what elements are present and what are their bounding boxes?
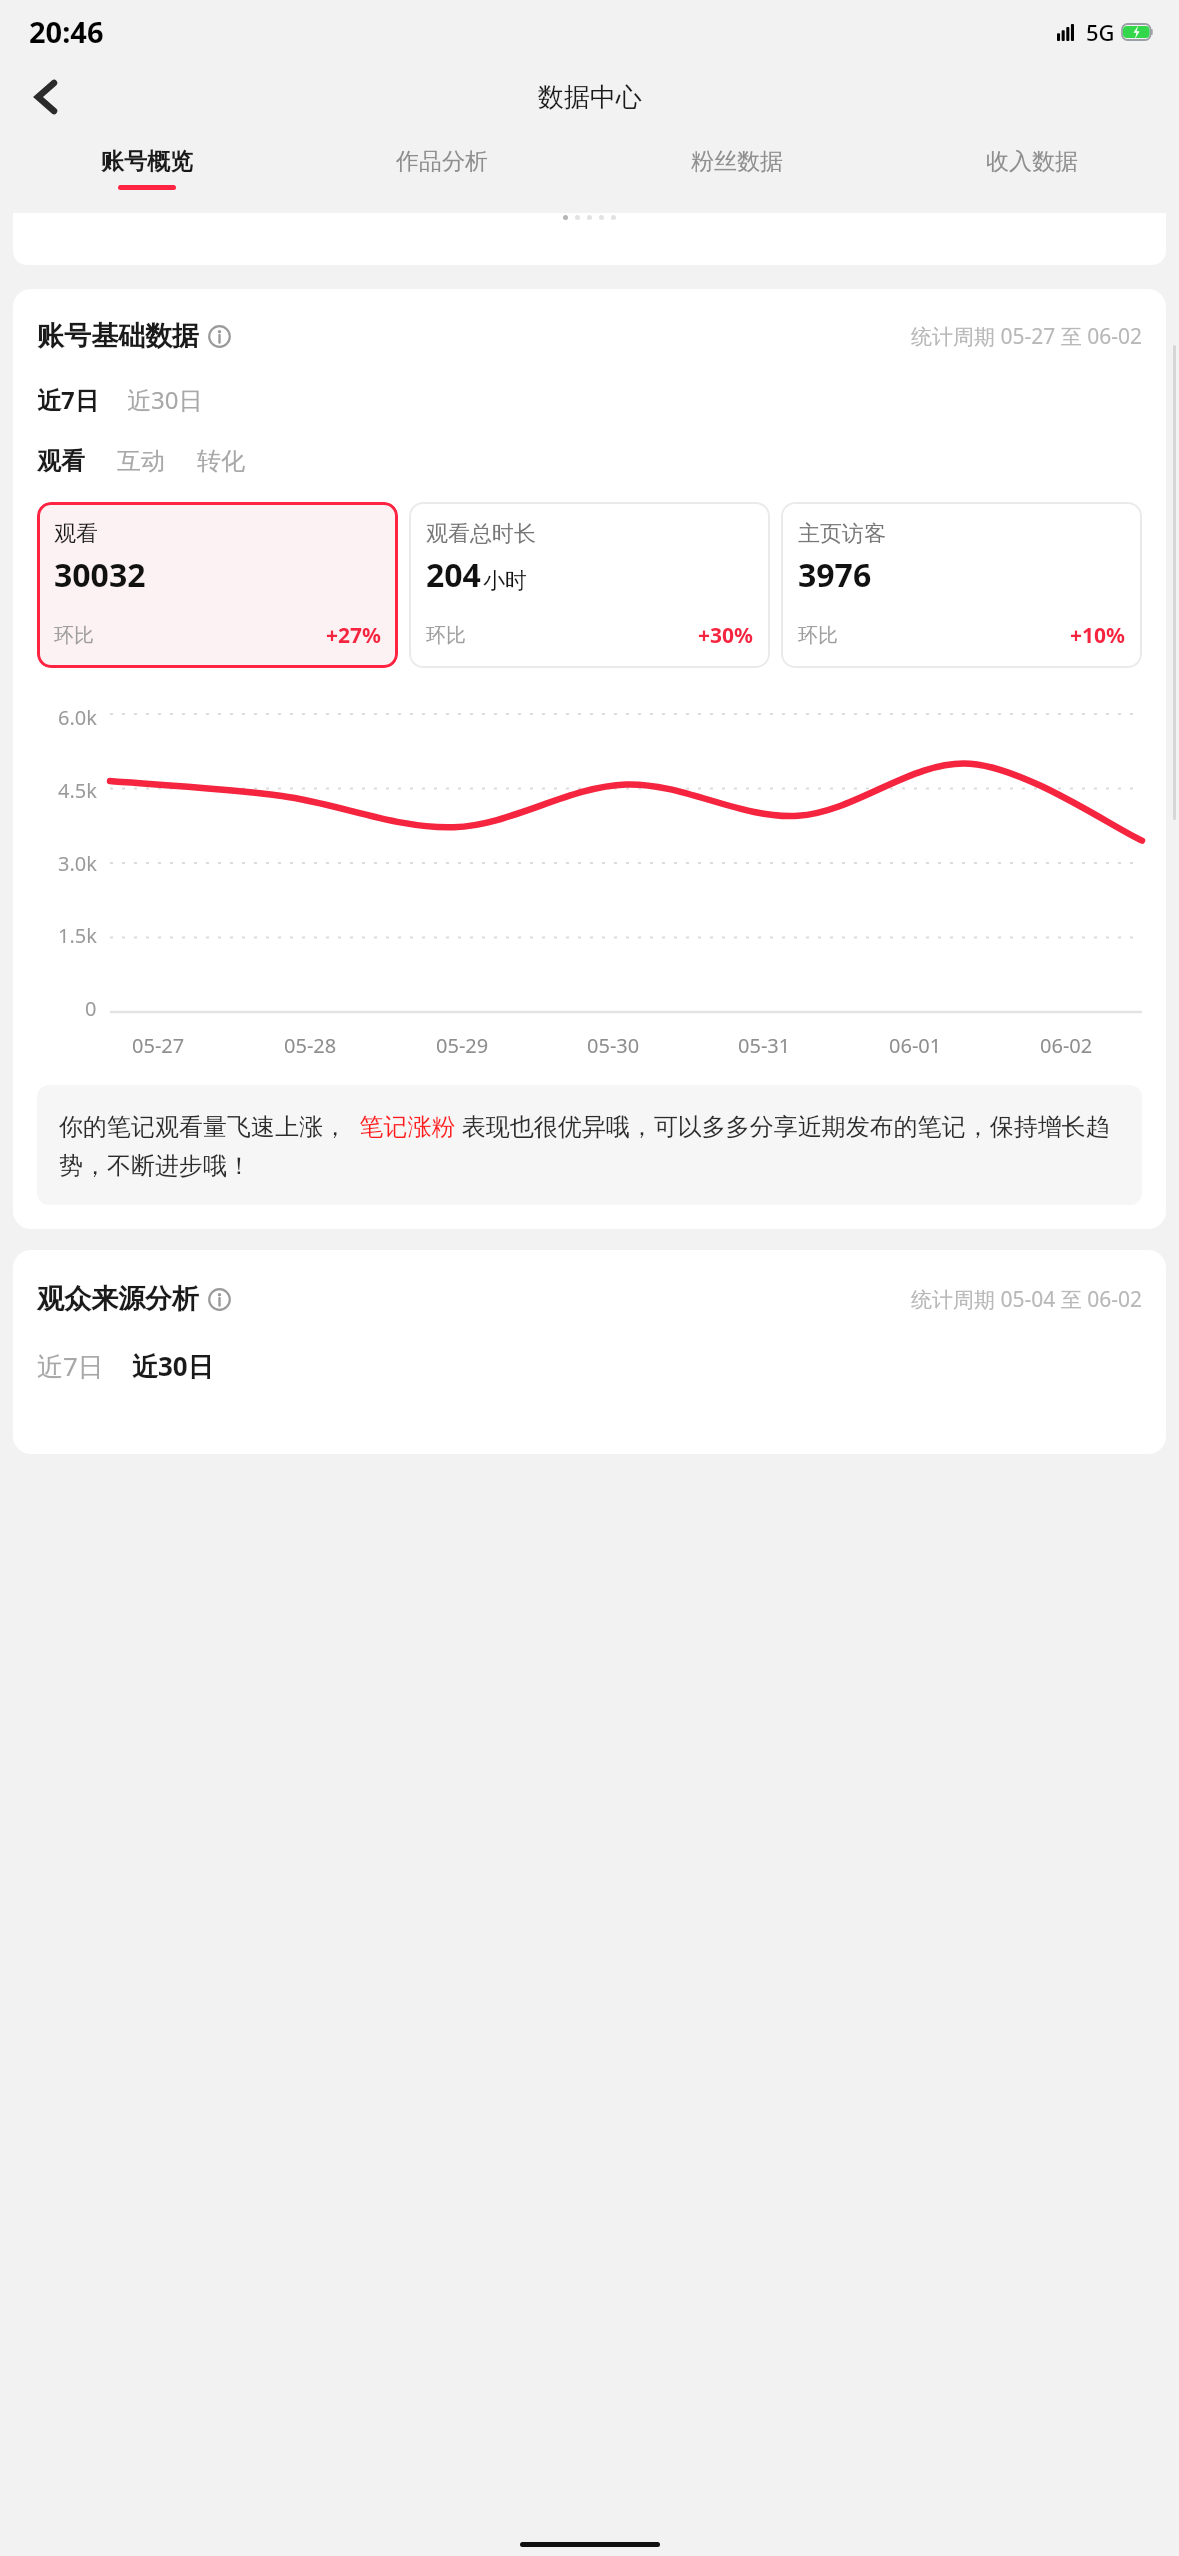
staticText: 收入数据 [986, 147, 1078, 176]
staticText: 4.5k [58, 777, 97, 804]
button[interactable]: 近30日 [127, 383, 203, 416]
staticText: +30% [698, 621, 753, 650]
button[interactable]: 观看 [37, 446, 85, 476]
staticText: 05-29 [436, 1032, 489, 1059]
staticText: 5G [1086, 17, 1115, 47]
button[interactable]: Info [208, 325, 231, 348]
staticText: 数据中心 [538, 81, 642, 114]
button[interactable]: Info [208, 1288, 231, 1311]
staticText: 账号基础数据 [37, 319, 199, 353]
staticText: 小时 [483, 567, 527, 595]
staticText: 06-02 [1040, 1032, 1093, 1059]
staticText: 统计周期 05-27 至 06-02 [911, 322, 1142, 351]
staticText: 观看 [54, 520, 98, 548]
button[interactable]: 观看总时长 [409, 502, 770, 668]
staticText: 粉丝数据 [691, 147, 783, 176]
staticText: 1.5k [58, 922, 97, 949]
staticText: 3976 [798, 553, 872, 597]
staticText: 05-31 [738, 1032, 791, 1059]
staticText: 05-28 [284, 1032, 337, 1059]
staticText: 20:46 [29, 12, 104, 51]
staticText: 观看总时长 [426, 520, 536, 548]
staticText: 观看 [37, 446, 85, 476]
button[interactable]: 粉丝数据 [589, 135, 884, 201]
button[interactable]: Back [20, 71, 72, 123]
staticText: 30032 [54, 553, 146, 597]
staticText: 互动 [117, 446, 165, 476]
staticText: +10% [1070, 621, 1125, 650]
staticText: 转化 [197, 446, 245, 476]
staticText: 你的笔记观看量飞速上涨， 笔记涨粉 表现也很优异哦，可以多多分享近期发布的笔记，… [59, 1109, 1120, 1181]
staticText: 近7日 [37, 383, 99, 416]
staticText: +27% [326, 621, 381, 650]
button[interactable]: 近7日 [37, 1348, 104, 1384]
button[interactable]: 互动 [117, 446, 165, 476]
button[interactable]: 观看 [37, 502, 398, 668]
staticText: 账号概览 [101, 147, 193, 176]
staticText: 环比 [798, 623, 838, 648]
button[interactable]: 账号概览 [0, 135, 294, 201]
button[interactable]: 转化 [197, 446, 245, 476]
staticText: 观众来源分析 [37, 1282, 199, 1316]
staticText: 06-01 [889, 1032, 942, 1059]
staticText: 05-30 [587, 1032, 640, 1059]
staticText: 0 [85, 995, 97, 1022]
button[interactable]: 作品分析 [294, 135, 589, 201]
staticText: 3.0k [58, 850, 97, 877]
staticText: 204 [426, 553, 481, 597]
button[interactable]: 收入数据 [884, 135, 1179, 201]
staticText: 环比 [426, 623, 466, 648]
staticText: 近30日 [127, 383, 203, 416]
staticText: 主页访客 [798, 520, 886, 548]
button[interactable]: 主页访客 [781, 502, 1142, 668]
staticText: 05-27 [132, 1032, 185, 1059]
staticText: 作品分析 [396, 147, 488, 176]
staticText: 近30日 [132, 1348, 214, 1384]
button[interactable]: 近30日 [132, 1348, 214, 1384]
button[interactable]: 近7日 [37, 383, 99, 416]
staticText: 6.0k [58, 704, 97, 731]
staticText: 统计周期 05-04 至 06-02 [911, 1285, 1142, 1314]
staticText: 环比 [54, 623, 94, 648]
staticText: 近7日 [37, 1348, 104, 1384]
